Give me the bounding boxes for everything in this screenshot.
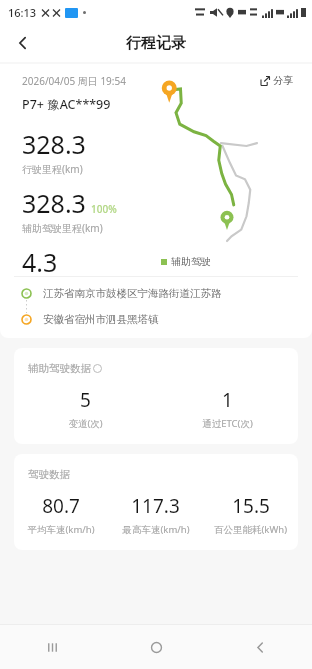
staticText: 100% xyxy=(91,202,117,216)
staticText: 通过ETC(次) xyxy=(202,417,253,430)
staticText: 328.3 xyxy=(22,127,86,161)
button[interactable]: Home xyxy=(104,625,208,669)
staticText: P7+ 豫AC***99 xyxy=(22,96,111,113)
staticText: 1 xyxy=(222,387,233,413)
staticText: 最高车速(km/h) xyxy=(122,523,190,536)
staticText: 安徽省宿州市泗县黑塔镇 xyxy=(43,313,159,326)
staticText: 行驶里程(km) xyxy=(22,162,83,176)
staticText: 驾驶数据 xyxy=(28,468,70,481)
staticText: 117.3 xyxy=(131,493,180,519)
staticText: 辅助驾驶 xyxy=(171,255,211,268)
staticText: 16:13 xyxy=(8,5,37,20)
staticText: 分享 xyxy=(273,74,293,87)
button[interactable]: Recent apps xyxy=(0,625,104,669)
button[interactable]: Back xyxy=(208,625,312,669)
staticText: 平均车速(km/h) xyxy=(27,523,95,536)
staticText: 328.3 xyxy=(22,186,86,220)
button[interactable]: 分享 xyxy=(251,70,302,91)
staticText: 2026/04/05 周日 19:54 xyxy=(22,74,126,88)
staticText: 辅助驾驶数据 xyxy=(28,362,91,375)
staticText: 4.3 xyxy=(22,245,58,272)
staticText: 5 xyxy=(80,387,91,413)
staticText: 变道(次) xyxy=(68,417,103,430)
staticText: 15.5 xyxy=(232,493,270,519)
button[interactable]: Back xyxy=(6,26,40,60)
staticText: 80.7 xyxy=(42,493,80,519)
staticText: 江苏省南京市鼓楼区宁海路街道江苏路 xyxy=(43,287,222,300)
staticText: 行程记录 xyxy=(126,34,186,53)
staticText: 辅助驾驶里程(km) xyxy=(22,221,103,235)
staticText: 百公里能耗(kWh) xyxy=(214,523,287,536)
